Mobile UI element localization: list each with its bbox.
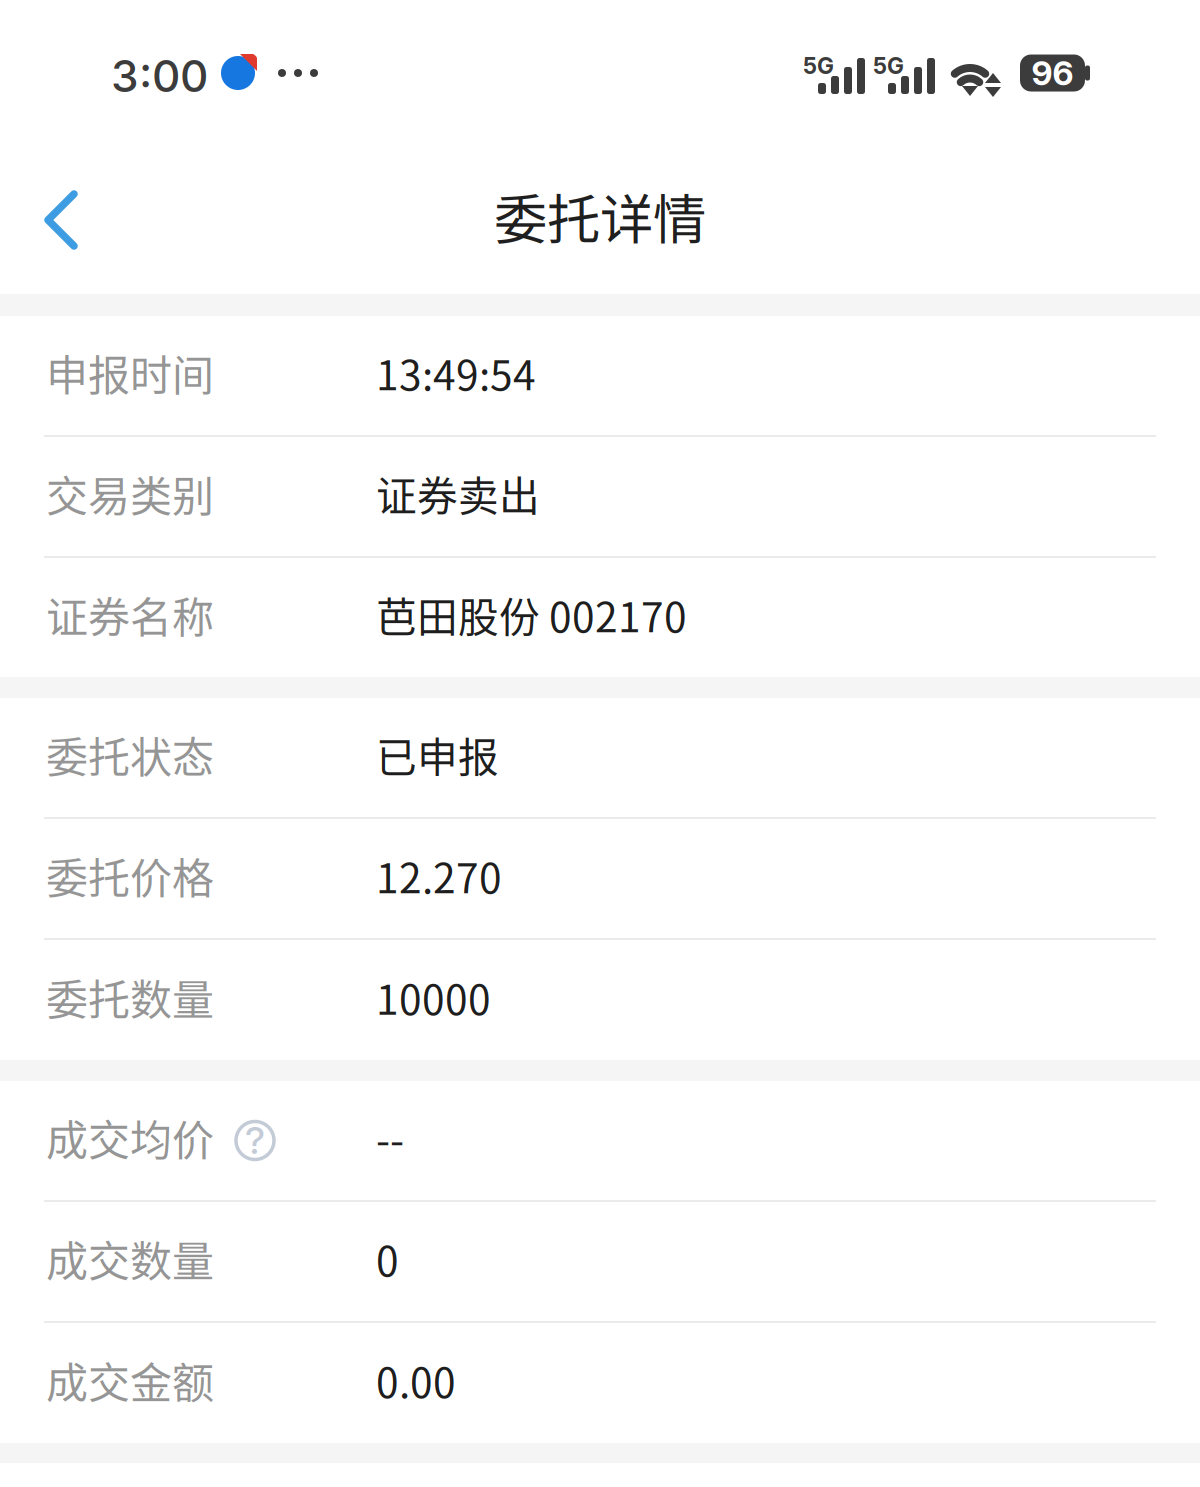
staticText: ? bbox=[245, 1118, 265, 1163]
staticText: 12.270 bbox=[376, 846, 502, 905]
staticText: 委托数量 bbox=[46, 967, 214, 1027]
staticText: 10000 bbox=[376, 968, 491, 1026]
staticText: 5G bbox=[803, 52, 834, 79]
staticText: 5G bbox=[873, 52, 904, 79]
staticText: 证券卖出 bbox=[376, 464, 540, 523]
staticText: 成交均价 bbox=[46, 1107, 214, 1168]
staticText: 委托详情 bbox=[494, 177, 706, 255]
staticText: 委托价格 bbox=[46, 845, 214, 906]
staticText: 芭田股份 002170 bbox=[376, 585, 687, 644]
staticText: 3:00 bbox=[111, 49, 208, 103]
staticText: 0.00 bbox=[376, 1351, 456, 1409]
staticText: 成交金额 bbox=[46, 1350, 214, 1410]
button[interactable]: 返回 bbox=[0, 166, 122, 274]
staticText: 已申报 bbox=[376, 725, 499, 784]
staticText: 证券名称 bbox=[46, 584, 214, 645]
staticText: 申报时间 bbox=[46, 342, 214, 403]
button[interactable]: 成交均价说明 bbox=[214, 1120, 275, 1160]
staticText: 96 bbox=[1031, 53, 1073, 93]
staticText: 成交数量 bbox=[46, 1228, 214, 1289]
staticText: 委托状态 bbox=[46, 724, 214, 785]
staticText: 0 bbox=[376, 1229, 399, 1288]
staticText: -- bbox=[376, 1108, 404, 1167]
staticText: 交易类别 bbox=[46, 463, 214, 524]
staticText: 13:49:54 bbox=[376, 343, 536, 402]
